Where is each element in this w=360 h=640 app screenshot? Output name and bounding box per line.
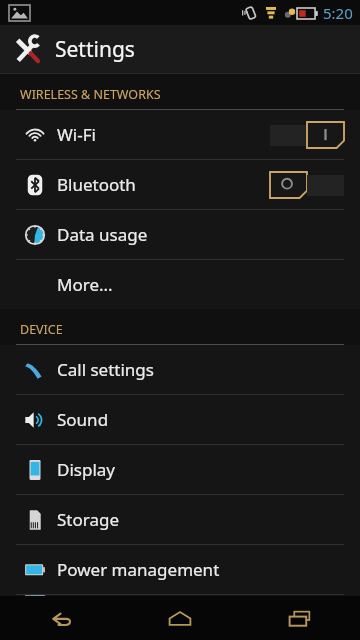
button[interactable]: More...	[0, 260, 360, 309]
button[interactable]: Sound	[0, 395, 360, 444]
button[interactable]: Recent apps	[240, 596, 360, 640]
button[interactable]: Wi-Fi	[0, 110, 360, 159]
staticText: Data usage	[57, 223, 148, 246]
button[interactable]: Storage	[0, 495, 360, 544]
staticText: 5:20	[323, 3, 353, 23]
staticText: Call settings	[57, 358, 154, 381]
staticText: Bluetooth	[57, 173, 136, 196]
staticText: Sound	[57, 408, 109, 431]
button[interactable]: Data usage	[0, 210, 360, 259]
staticText: Storage	[57, 508, 120, 531]
button[interactable]: Back	[0, 596, 120, 640]
staticText: Display	[57, 458, 115, 481]
button[interactable]: Power management	[0, 545, 360, 594]
button[interactable]: Bluetooth off	[270, 172, 344, 198]
button[interactable]: Apps	[0, 595, 360, 596]
button[interactable]: Call settings	[0, 345, 360, 394]
staticText: DEVICE	[20, 321, 63, 338]
staticText: WIRELESS & NETWORKS	[20, 86, 161, 103]
staticText: Power management	[57, 558, 220, 581]
button[interactable]: Home	[120, 596, 240, 640]
staticText: Settings	[55, 35, 135, 64]
button[interactable]: Wi-Fi on	[270, 122, 344, 148]
button[interactable]: Bluetooth	[0, 160, 360, 209]
staticText: Wi-Fi	[57, 123, 96, 146]
button[interactable]: Display	[0, 445, 360, 494]
staticText: More...	[57, 273, 113, 296]
